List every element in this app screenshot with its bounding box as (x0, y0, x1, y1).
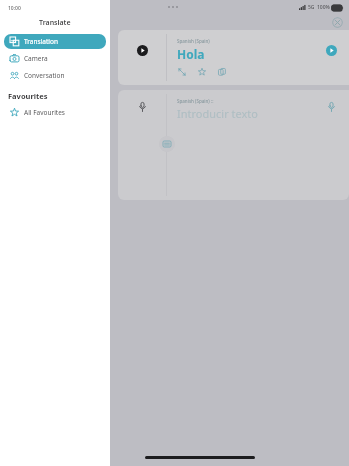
staticText: Favourites (8, 91, 48, 101)
button[interactable]: Conversation (4, 68, 106, 83)
button[interactable]: Play source (118, 30, 166, 85)
staticText: 100% (317, 4, 330, 11)
staticText: 5G (308, 4, 315, 11)
button[interactable]: Favourite (197, 67, 207, 77)
button[interactable]: Close (332, 17, 343, 28)
staticText: Introducir texto (177, 106, 258, 121)
staticText: Translate (39, 18, 71, 28)
staticText: Hola (177, 46, 205, 62)
button[interactable]: Microphone source (118, 90, 166, 200)
button[interactable]: All Favourites (4, 105, 106, 120)
button[interactable]: Play translation (313, 30, 349, 85)
button[interactable]: Keyboard (159, 136, 175, 152)
staticText: All Favourites (24, 108, 65, 117)
staticText: Conversation (24, 71, 65, 80)
button[interactable]: Expand (177, 67, 187, 77)
staticText: Translation (24, 37, 58, 46)
staticText: 10:00 (8, 5, 21, 12)
button[interactable]: Translation (4, 34, 106, 49)
staticText: Spanish (Spain) (177, 38, 210, 44)
button[interactable]: Microphone target (313, 90, 349, 200)
button[interactable]: Camera (4, 51, 106, 66)
staticText: Spanish (Spain) :: (177, 98, 214, 104)
staticText: Camera (24, 54, 48, 63)
button[interactable]: Copy (217, 67, 227, 77)
